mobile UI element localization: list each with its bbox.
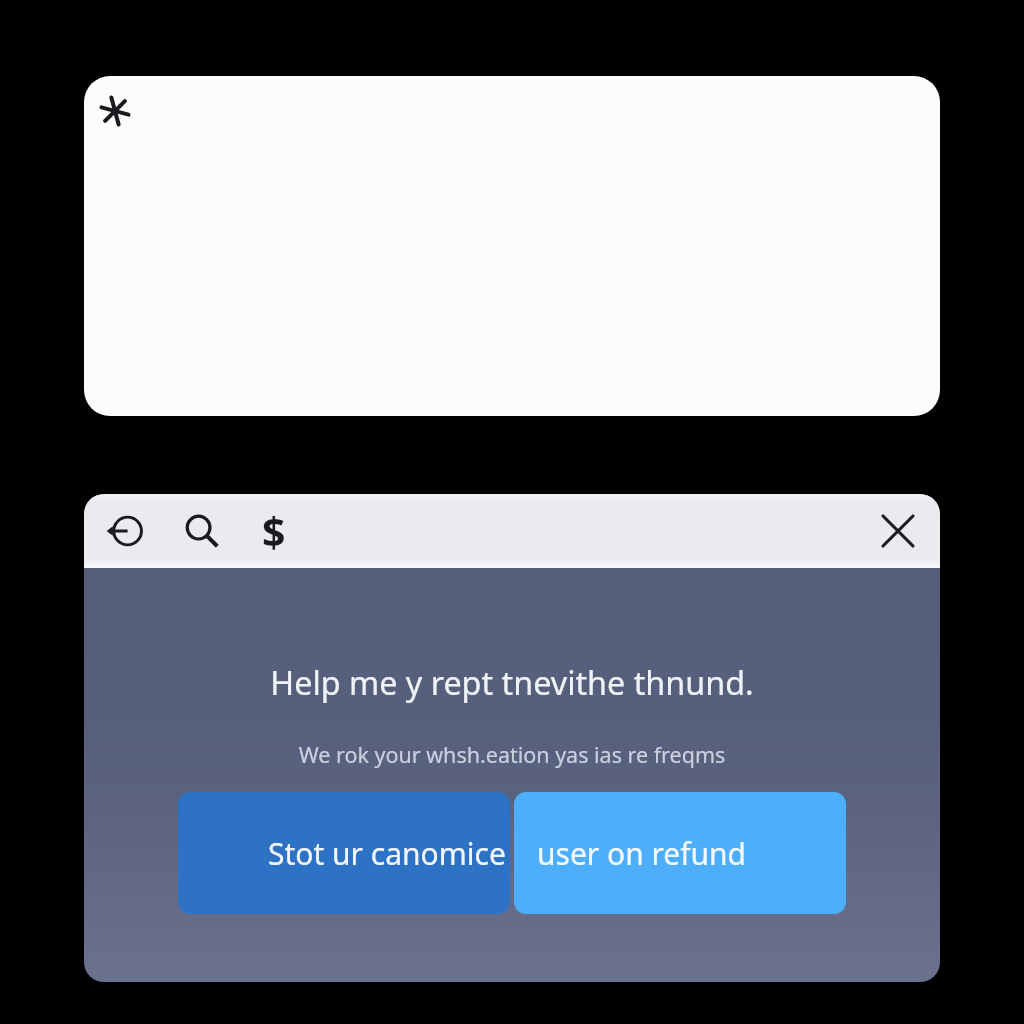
staticText: Stot ur canomice	[268, 833, 506, 874]
staticText: We rok your whsh.eation yas ias re freqm…	[84, 740, 940, 769]
button[interactable]: Pricing	[246, 503, 302, 559]
button[interactable]: Search	[174, 503, 230, 559]
button[interactable]: Content card	[84, 76, 940, 416]
staticText: $	[262, 503, 286, 559]
button[interactable]: Restore	[96, 503, 152, 559]
button[interactable]: Close	[870, 503, 926, 559]
button[interactable]: Sparkle	[91, 87, 139, 135]
staticText: Help me y rept tnevithe thnund.	[84, 660, 940, 704]
button[interactable]: user on refund	[514, 792, 846, 914]
button[interactable]: Stot ur canomice	[178, 792, 510, 914]
staticText: user on refund	[537, 833, 747, 874]
